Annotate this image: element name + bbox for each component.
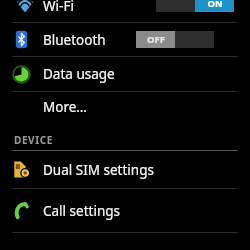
staticText: ON: [207, 0, 223, 10]
button[interactable]: Bluetooth: [0, 23, 250, 56]
staticText: Bluetooth: [43, 31, 106, 49]
staticText: DEVICE: [14, 133, 53, 147]
staticText: Call settings: [43, 202, 121, 220]
button[interactable]: Toggle off: [136, 31, 214, 48]
button[interactable]: Call settings: [0, 189, 250, 232]
button[interactable]: Toggle on: [156, 0, 234, 12]
staticText: More…: [43, 98, 88, 116]
button[interactable]: Data usage: [0, 57, 250, 91]
staticText: Wi-Fi: [43, 0, 74, 15]
button[interactable]: Wi-Fi: [0, 0, 250, 22]
staticText: OFF: [147, 33, 165, 46]
staticText: Data usage: [43, 65, 115, 83]
staticText: Dual SIM settings: [43, 161, 154, 179]
button[interactable]: More…: [0, 92, 250, 122]
button[interactable]: Dual SIM settings: [0, 151, 250, 188]
